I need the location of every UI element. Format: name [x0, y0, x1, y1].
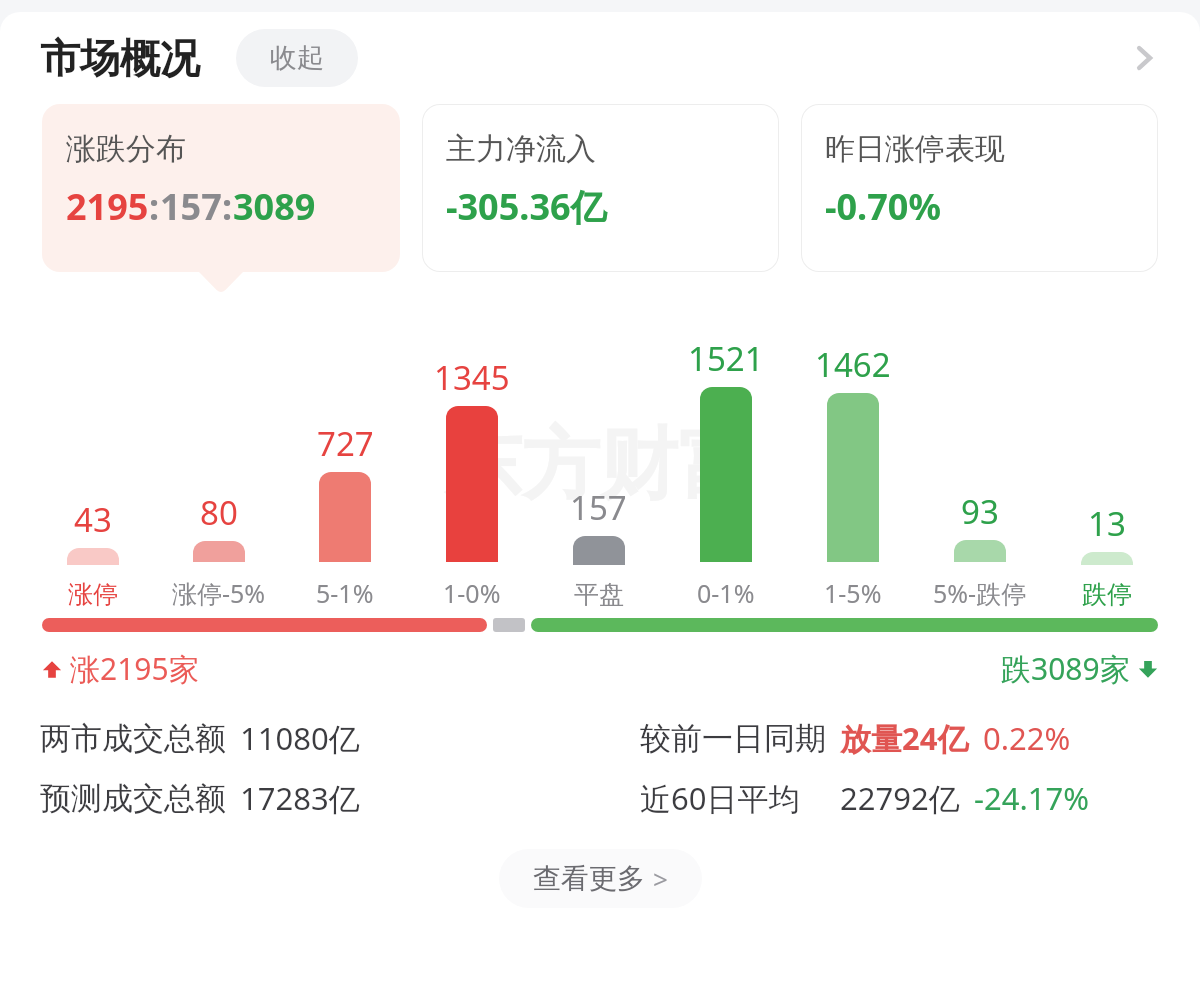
staticText: 跌3089家	[1001, 648, 1130, 689]
staticText: 昨日涨停表现	[825, 130, 1005, 168]
staticText: 涨2195家	[70, 648, 199, 689]
staticText: 1521	[688, 336, 764, 381]
staticText: 13	[1088, 501, 1126, 546]
staticText: 收起	[270, 41, 324, 75]
staticText: 两市成交总额	[40, 719, 226, 758]
staticText: 放量24亿	[840, 717, 969, 759]
staticText: >	[653, 861, 668, 896]
button[interactable]: 更多	[1116, 30, 1172, 86]
staticText: 东方财富	[201, 416, 999, 514]
staticText: 5-1%	[316, 576, 374, 610]
staticText: 跌停	[1082, 579, 1132, 610]
button[interactable]: 昨日涨停表现	[801, 104, 1158, 272]
staticText: 1-0%	[443, 576, 501, 610]
staticText: 80	[200, 490, 238, 535]
staticText: 平盘	[574, 579, 624, 610]
staticText: 0-1%	[697, 576, 755, 610]
staticText: 3089	[233, 182, 316, 231]
staticText: 727	[317, 421, 374, 466]
staticText: -305.36亿	[446, 182, 607, 231]
staticText: 5%-跌停	[933, 576, 1027, 610]
staticText: 1462	[815, 342, 891, 387]
staticText: 157	[570, 485, 627, 530]
staticText: 1345	[434, 355, 510, 400]
staticText: 93	[961, 489, 999, 534]
staticText: 1-5%	[824, 576, 882, 610]
staticText: 涨跌分布	[66, 130, 186, 168]
staticText: :	[149, 182, 160, 231]
staticText: 查看更多	[533, 861, 645, 896]
staticText: 涨停-5%	[172, 576, 266, 610]
staticText: 市场概况	[40, 33, 200, 83]
button[interactable]: 涨跌分布	[42, 104, 400, 272]
button[interactable]: 收起	[236, 29, 358, 87]
staticText: 涨停	[68, 579, 118, 610]
staticText: :	[222, 182, 233, 231]
staticText: 43	[74, 497, 112, 542]
staticText: 近60日平均	[640, 777, 800, 819]
staticText: 17283亿	[240, 777, 360, 819]
button[interactable]: 查看更多	[499, 849, 702, 908]
staticText: -24.17%	[974, 777, 1089, 819]
staticText: 22792亿	[840, 777, 960, 819]
staticText: 较前一日同期	[640, 719, 826, 758]
staticText: 主力净流入	[446, 130, 596, 168]
button[interactable]: 主力净流入	[422, 104, 779, 272]
staticText: 157	[160, 182, 222, 231]
staticText: 2195	[66, 182, 149, 231]
staticText: 预测成交总额	[40, 779, 226, 818]
staticText: 0.22%	[983, 717, 1071, 759]
staticText: -0.70%	[825, 182, 941, 231]
staticText: 11080亿	[240, 717, 360, 759]
